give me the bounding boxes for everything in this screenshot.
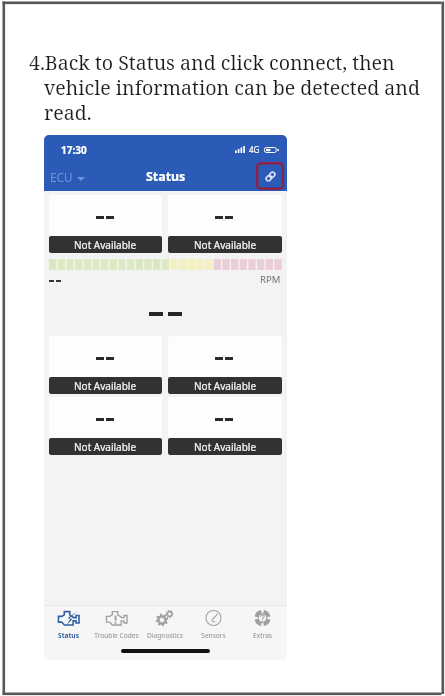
- button[interactable]: Diagnostics: [140, 610, 189, 660]
- button[interactable]: Status: [44, 610, 92, 660]
- staticText: Not Available: [74, 440, 137, 454]
- button[interactable]: Sensors: [189, 610, 238, 660]
- staticText: Not Available: [194, 379, 257, 393]
- staticText: 17:30: [61, 143, 87, 157]
- staticText: Status: [146, 168, 186, 185]
- staticText: Diagnostics: [147, 631, 183, 640]
- button[interactable]: ECU: [44, 163, 91, 189]
- button[interactable]: Not Available: [49, 336, 162, 394]
- staticText: Status: [58, 631, 79, 640]
- staticText: Trouble Codes: [94, 631, 139, 640]
- button[interactable]: Not Available: [49, 195, 162, 253]
- staticText: Not Available: [194, 238, 257, 252]
- staticText: ECU: [50, 169, 73, 185]
- button[interactable]: Not Available: [168, 397, 282, 455]
- staticText: vehicle information can be detected and: [44, 74, 421, 99]
- button[interactable]: Not Available: [168, 336, 282, 394]
- staticText: RPM: [260, 273, 281, 285]
- button[interactable]: Extras: [238, 610, 287, 660]
- button[interactable]: Trouble Codes: [92, 610, 140, 660]
- button[interactable]: Not Available: [168, 195, 282, 253]
- staticText: Not Available: [194, 440, 257, 454]
- staticText: 4.Back to Status and click connect, then: [29, 49, 395, 74]
- staticText: Sensors: [201, 631, 226, 640]
- button[interactable]: Connect: [256, 162, 284, 190]
- staticText: Not Available: [74, 379, 137, 393]
- staticText: read.: [44, 99, 92, 124]
- staticText: Not Available: [74, 238, 137, 252]
- button[interactable]: Not Available: [49, 397, 162, 455]
- staticText: 4G: [249, 144, 260, 155]
- staticText: Extras: [253, 631, 272, 640]
